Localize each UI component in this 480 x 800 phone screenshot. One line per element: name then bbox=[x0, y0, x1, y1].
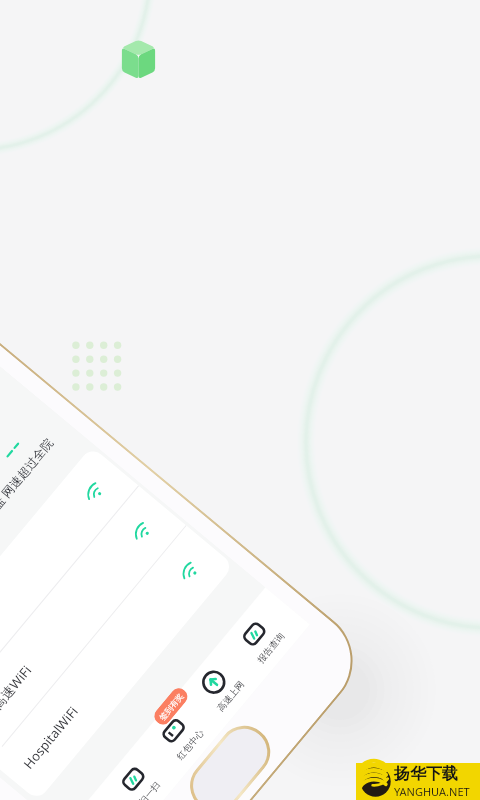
staticText: 高速上网 bbox=[214, 679, 246, 713]
staticText: 扫一扫 bbox=[136, 779, 162, 800]
staticText: YANGHUA.NET bbox=[394, 784, 470, 799]
button[interactable]: Home bbox=[179, 715, 281, 800]
button[interactable]: yanghua.net watermark bbox=[356, 763, 480, 800]
button[interactable]: 医院高速WiFi bbox=[0, 486, 187, 761]
button[interactable]: 报告查询 bbox=[217, 596, 302, 682]
staticText: HospitalWiFi bbox=[19, 703, 82, 772]
button[interactable]: 一次办 bbox=[55, 790, 141, 800]
button[interactable]: 医院高速WiFi-5G bbox=[0, 446, 139, 722]
button[interactable]: 红包中心 bbox=[137, 693, 222, 779]
button[interactable]: 扫一扫 bbox=[96, 742, 181, 800]
staticText: 报告查询 bbox=[255, 630, 286, 665]
staticText: 医院高速WiFi bbox=[0, 661, 35, 733]
button[interactable]: 高速上网 bbox=[177, 645, 262, 730]
staticText: 签到有奖 bbox=[157, 691, 185, 722]
staticText: 红包中心 bbox=[174, 727, 206, 762]
staticText: 医院WiFi全覆盖 网速超过全院 bbox=[0, 434, 56, 567]
staticText: 扬华下载 bbox=[394, 764, 458, 784]
staticText: 医院高速WiFi-5G bbox=[0, 605, 1, 693]
button[interactable]: HospitalWiFi bbox=[0, 526, 234, 800]
